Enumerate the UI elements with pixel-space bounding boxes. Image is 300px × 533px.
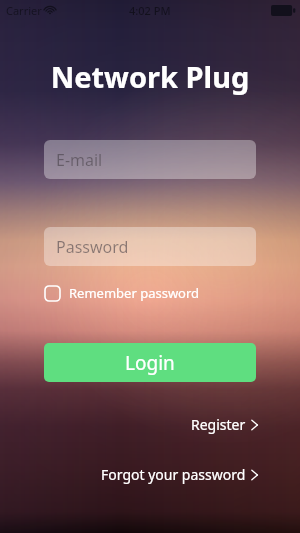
button[interactable]: Password <box>44 227 256 266</box>
staticText: Network Plug <box>0 57 300 96</box>
button[interactable]: Register <box>189 413 260 436</box>
staticText: Login <box>125 350 175 376</box>
staticText: Remember password <box>69 284 200 302</box>
staticText: 4:02 PM <box>129 3 171 18</box>
button[interactable]: E-mail <box>44 140 256 179</box>
button[interactable]: Remember password <box>44 280 256 306</box>
staticText: Carrier <box>6 3 42 18</box>
staticText: Forgot your password <box>101 465 246 484</box>
button[interactable]: Login <box>44 343 256 382</box>
staticText: Register <box>191 415 246 434</box>
button[interactable]: Forgot your password <box>99 463 260 486</box>
staticText: E-mail <box>56 149 103 171</box>
staticText: Password <box>56 236 129 258</box>
